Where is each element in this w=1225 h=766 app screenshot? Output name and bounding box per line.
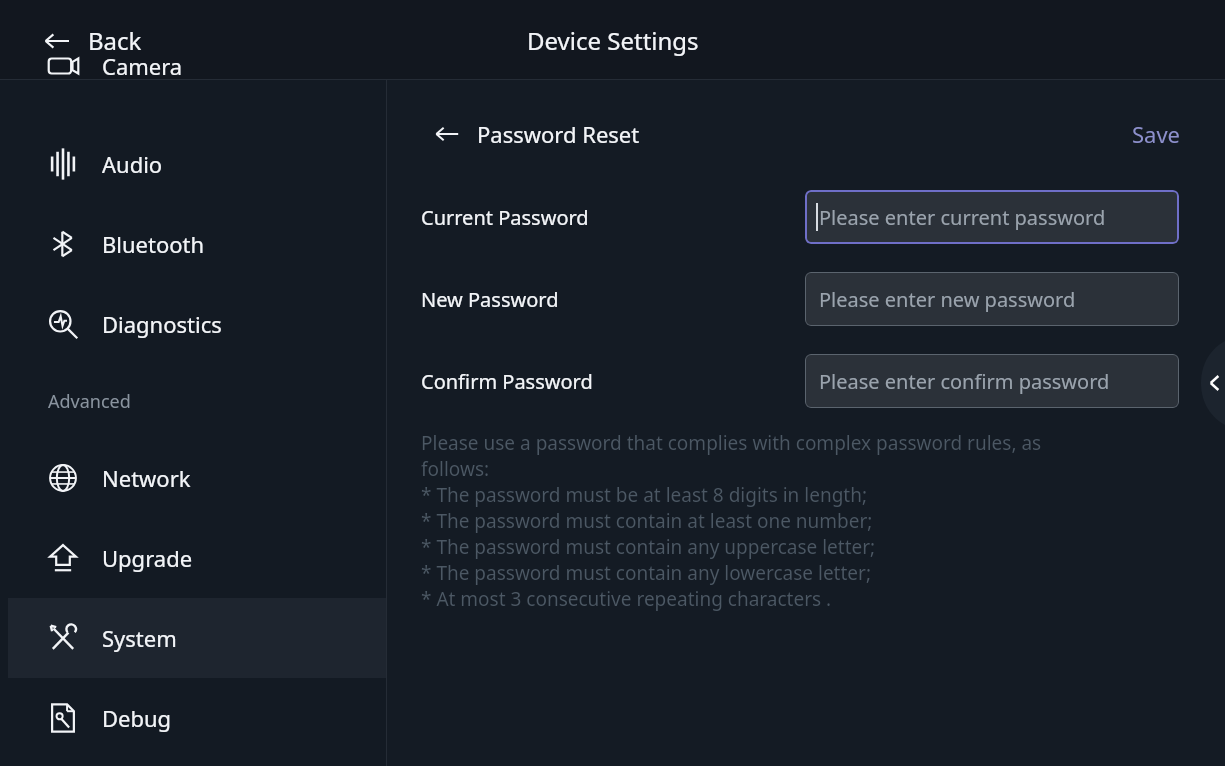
staticText: Current Password [421, 204, 589, 231]
staticText: Upgrade [102, 543, 193, 573]
staticText: Back [88, 24, 142, 57]
staticText: New Password [421, 286, 559, 313]
button[interactable]: Save [1124, 115, 1189, 153]
staticText: Debug [102, 703, 172, 733]
staticText: Camera [102, 51, 183, 81]
button[interactable]: System [8, 598, 386, 678]
staticText: Please use a password that complies with… [421, 430, 1042, 456]
staticText: Confirm Password [421, 368, 593, 395]
staticText: Please enter current password [819, 204, 1106, 231]
button[interactable]: Upgrade [0, 518, 386, 598]
staticText: Bluetooth [102, 229, 205, 259]
button[interactable]: Back [34, 18, 150, 63]
button[interactable]: Bluetooth [0, 204, 386, 284]
staticText: * The password must contain at least one… [421, 508, 873, 534]
button[interactable]: Debug [0, 678, 386, 758]
button[interactable]: Network [0, 438, 386, 518]
staticText: Diagnostics [102, 309, 222, 339]
staticText: Save [1132, 119, 1181, 149]
staticText: follows: [421, 456, 490, 482]
button[interactable]: Open panel [1201, 341, 1225, 425]
staticText: System [102, 623, 177, 653]
staticText: Audio [102, 149, 163, 179]
button[interactable]: Audio [0, 124, 386, 204]
staticText: Please enter confirm password [819, 368, 1110, 395]
staticText: Device Settings [527, 24, 699, 57]
staticText: * The password must be at least 8 digits… [421, 482, 868, 508]
staticText: Advanced [48, 389, 131, 414]
button[interactable]: Please enter current password [805, 190, 1179, 244]
staticText: * At most 3 consecutive repeating charac… [421, 586, 832, 612]
staticText: * The password must contain any uppercas… [421, 534, 876, 560]
button[interactable]: Password Reset [425, 115, 648, 153]
button[interactable]: Please enter confirm password [805, 354, 1179, 408]
staticText: * The password must contain any lowercas… [421, 560, 871, 586]
button[interactable]: Diagnostics [0, 284, 386, 364]
staticText: Network [102, 463, 191, 493]
staticText: Password Reset [477, 119, 640, 149]
button[interactable]: Please enter new password [805, 272, 1179, 326]
staticText: Please enter new password [819, 286, 1076, 313]
